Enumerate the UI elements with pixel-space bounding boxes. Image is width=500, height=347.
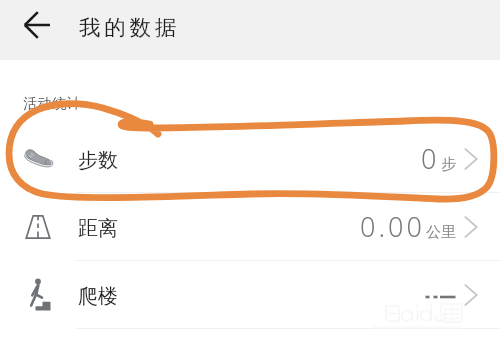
button[interactable]: 步数	[0, 125, 500, 192]
button[interactable]: 距离	[0, 193, 500, 260]
staticText: 步	[441, 155, 456, 174]
staticText: 步数	[78, 148, 118, 173]
button[interactable]: Back	[13, 1, 61, 49]
staticText: 公里	[426, 223, 456, 242]
staticText: 爬楼	[78, 284, 118, 309]
button[interactable]: 爬楼	[0, 261, 500, 328]
staticText: 活动统计	[23, 95, 82, 113]
staticText: 距离	[78, 216, 118, 241]
staticText: 0	[421, 140, 440, 177]
staticText: 我的数据	[79, 14, 181, 41]
staticText: 0.00	[360, 208, 425, 245]
